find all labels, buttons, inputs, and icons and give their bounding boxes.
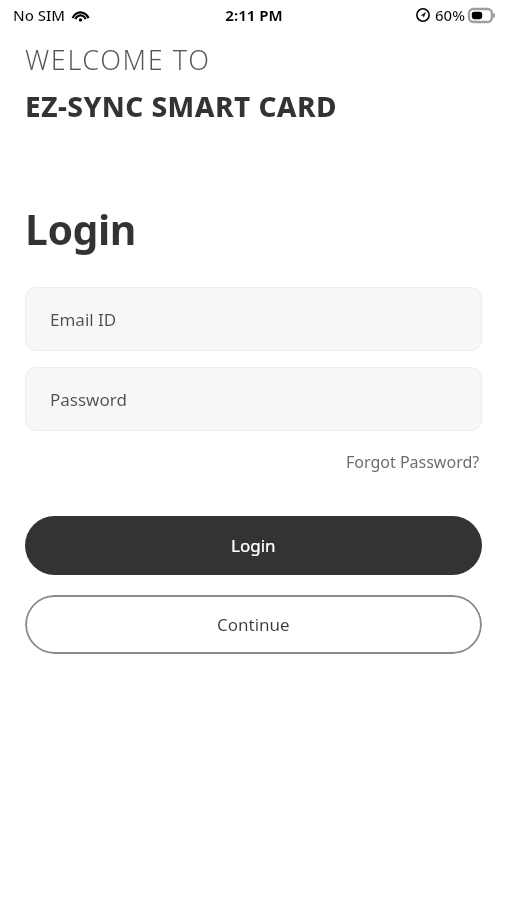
staticText: Login (25, 201, 136, 257)
staticText: Email ID (50, 308, 117, 331)
staticText: Forgot Password? (346, 451, 480, 473)
button[interactable]: Forgot Password? (344, 447, 482, 477)
staticText: Continue (217, 613, 290, 636)
staticText: Password (50, 388, 127, 411)
button[interactable]: Email ID (25, 287, 482, 351)
staticText: Login (231, 534, 276, 557)
staticText: 2:11 PM (225, 5, 283, 25)
staticText: 60% (435, 5, 465, 25)
staticText: EZ-SYNC SMART CARD (25, 87, 338, 125)
button[interactable]: Password (25, 367, 482, 431)
button[interactable]: Continue (25, 595, 482, 654)
staticText: WELCOME TO (25, 41, 211, 78)
button[interactable]: Login (25, 516, 482, 575)
staticText: No SIM (13, 5, 66, 25)
